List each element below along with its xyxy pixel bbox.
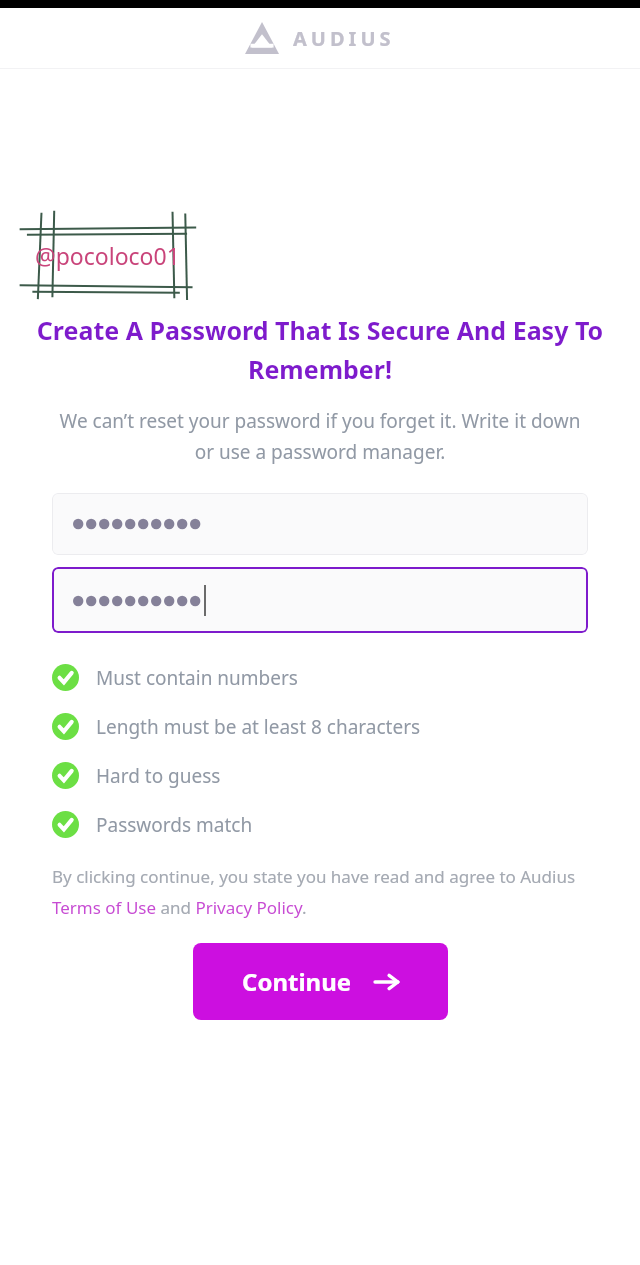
staticText: Hard to guess <box>96 763 221 789</box>
staticText: Continue <box>242 965 352 998</box>
button[interactable]: Password <box>52 493 588 555</box>
staticText: Length must be at least 8 characters <box>96 714 421 740</box>
other: Continue <box>374 971 400 993</box>
staticText: Passwords match <box>96 812 253 838</box>
button[interactable]: Hard to guess <box>52 751 640 800</box>
button[interactable]: Continue <box>193 943 448 1020</box>
button[interactable]: Length must be at least 8 characters <box>52 702 640 751</box>
staticText: By clicking continue, you state you have… <box>52 865 600 919</box>
staticText: We can’t reset your password if you forg… <box>55 408 585 465</box>
button[interactable]: Confirm password <box>52 567 588 633</box>
staticText: AUDIUS <box>293 25 395 52</box>
button[interactable]: Must contain numbers <box>52 653 640 702</box>
staticText: Must contain numbers <box>96 665 298 691</box>
staticText: Create A Password That Is Secure And Eas… <box>30 313 610 386</box>
staticText: @pocoloco01 <box>35 240 180 271</box>
button[interactable]: Passwords match <box>52 800 640 849</box>
